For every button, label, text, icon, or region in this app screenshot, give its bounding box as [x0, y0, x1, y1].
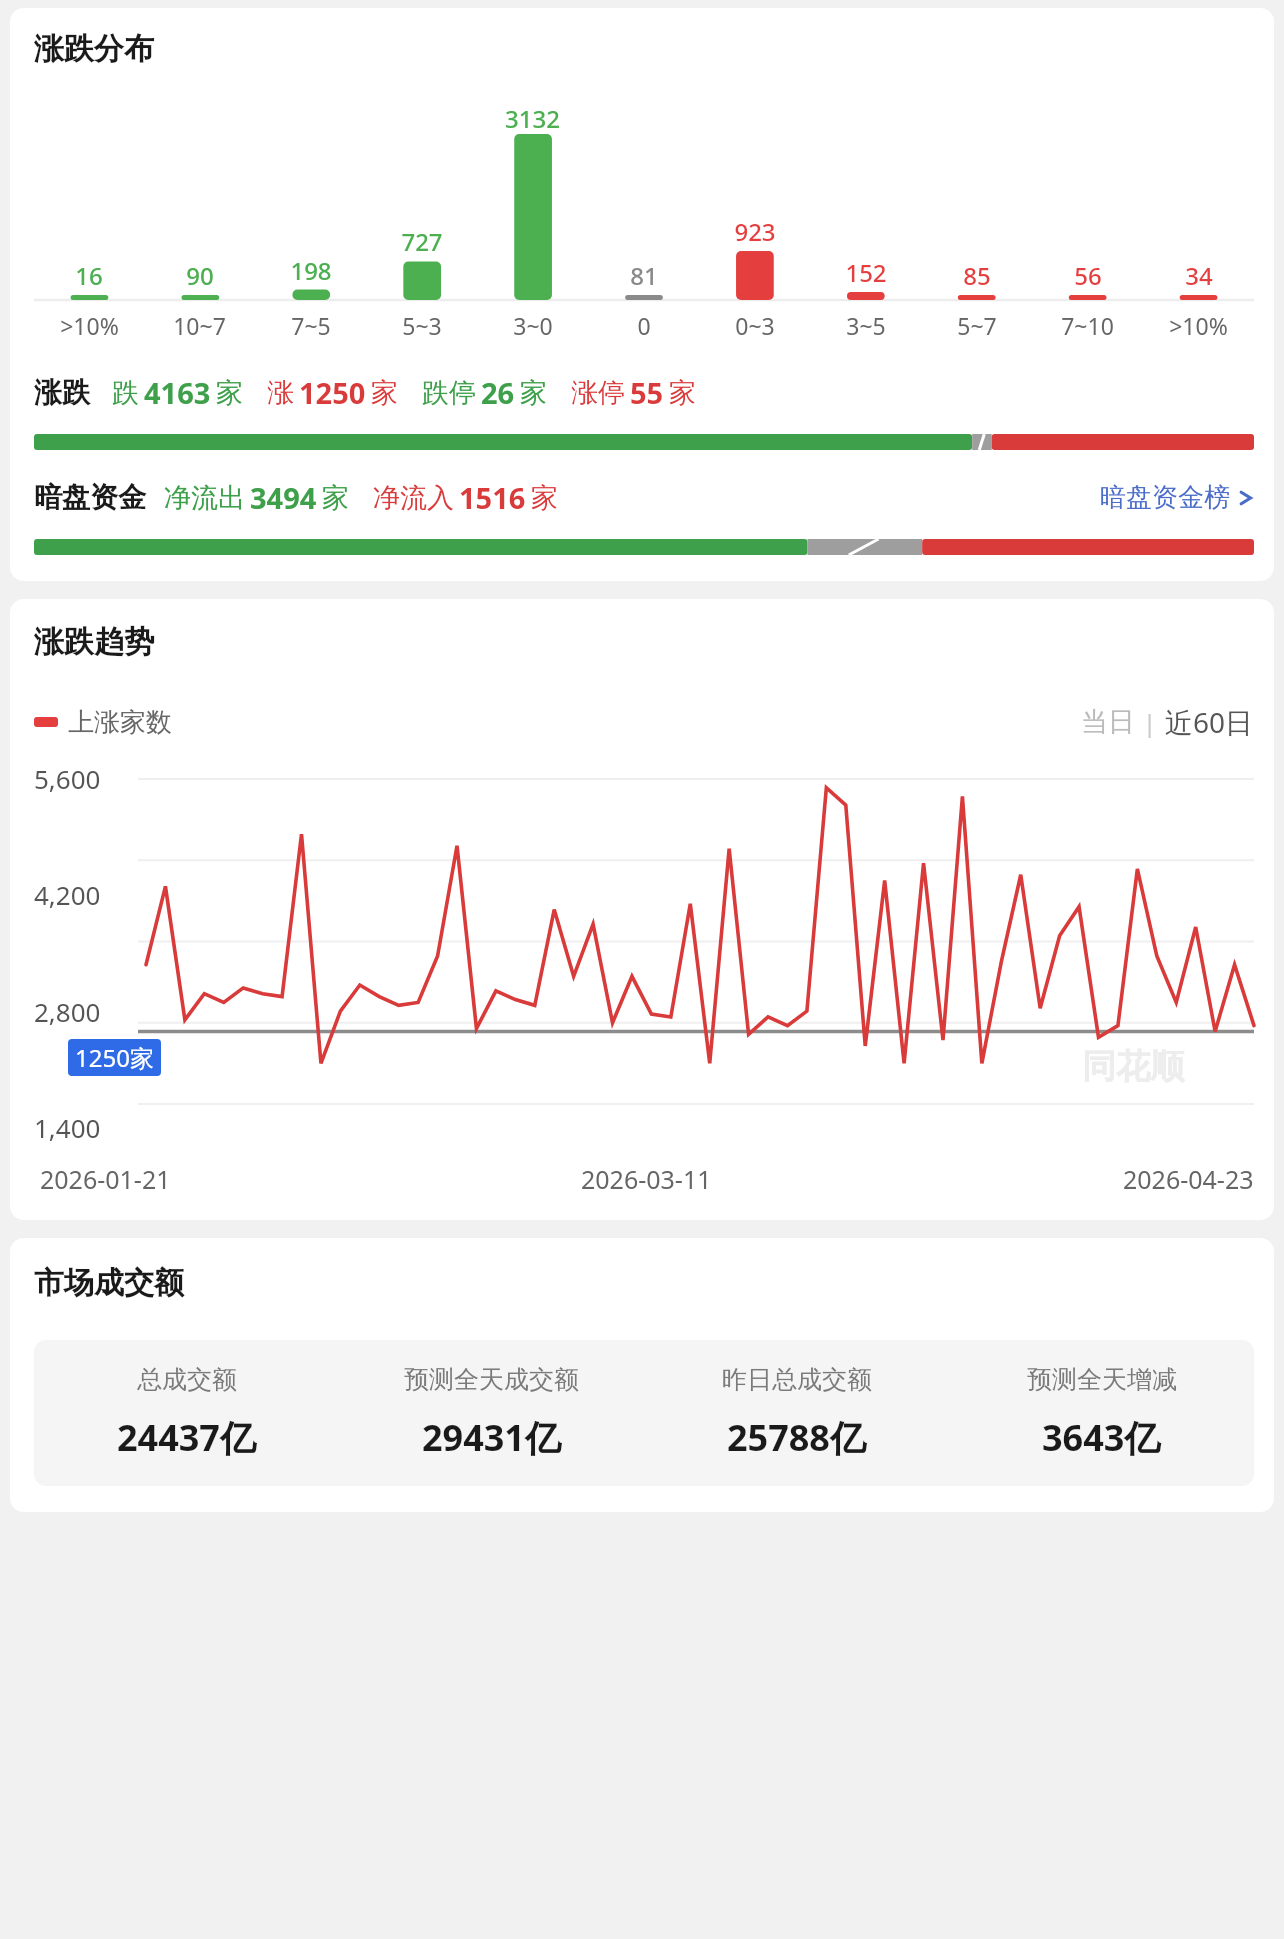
staticText: 0: [637, 310, 651, 341]
staticText: 4163: [144, 373, 211, 412]
staticText: 2,800: [34, 994, 101, 1029]
button[interactable]: 近60日: [1165, 703, 1254, 741]
staticText: 当日: [1081, 705, 1135, 739]
staticText: 家: [520, 376, 547, 410]
staticText: 昨日总成交额: [722, 1364, 872, 1395]
staticText: 涨跌分布: [34, 30, 154, 68]
staticText: >10%: [1169, 310, 1228, 341]
staticText: 198: [290, 254, 332, 287]
staticText: 152: [845, 256, 887, 289]
staticText: 2026-03-11: [581, 1162, 712, 1196]
staticText: 家: [669, 376, 696, 410]
staticText: 4,200: [34, 877, 101, 912]
staticText: 跌: [112, 376, 139, 410]
staticText: 3132: [505, 102, 560, 131]
staticText: 暗盘资金: [34, 480, 146, 515]
staticText: 81: [630, 259, 658, 292]
staticText: 3494: [250, 478, 317, 517]
staticText: 涨停: [571, 376, 625, 410]
staticText: 2026-04-23: [1123, 1162, 1254, 1196]
staticText: 同花顺: [1082, 1045, 1184, 1088]
staticText: 5~3: [402, 310, 442, 341]
button[interactable]: 暗盘资金榜: [1092, 481, 1254, 514]
staticText: 市场成交额: [34, 1264, 184, 1302]
staticText: 5~7: [957, 310, 997, 341]
staticText: 净流出: [164, 481, 245, 515]
staticText: 涨跌趋势: [34, 623, 154, 661]
staticText: 3~5: [846, 310, 886, 341]
staticText: 家: [371, 376, 398, 410]
staticText: 0~3: [735, 310, 775, 341]
staticText: 3643亿: [1042, 1413, 1161, 1462]
staticText: 25788亿: [727, 1413, 866, 1462]
staticText: 预测全天成交额: [404, 1364, 579, 1395]
staticText: 90: [186, 259, 214, 292]
staticText: 16: [75, 259, 103, 292]
staticText: 85: [963, 259, 991, 292]
staticText: 近60日: [1165, 703, 1254, 741]
staticText: 10~7: [173, 310, 226, 341]
staticText: 29431亿: [422, 1413, 561, 1462]
staticText: 7~10: [1061, 310, 1114, 341]
staticText: 1516: [459, 478, 526, 517]
staticText: 暗盘资金榜: [1100, 481, 1230, 514]
staticText: 家: [216, 376, 243, 410]
staticText: 涨跌: [34, 375, 90, 410]
button[interactable]: 当日: [1081, 705, 1135, 739]
staticText: 3~0: [513, 310, 553, 341]
staticText: 跌停: [422, 376, 476, 410]
staticText: 56: [1074, 259, 1102, 292]
staticText: 净流入: [373, 481, 454, 515]
staticText: 上涨家数: [68, 706, 172, 739]
staticText: 55: [630, 373, 664, 412]
staticText: 1250: [299, 373, 366, 412]
staticText: 涨: [267, 376, 294, 410]
staticText: 1250家: [75, 1041, 154, 1074]
staticText: 923: [734, 215, 776, 248]
staticText: 总成交额: [137, 1364, 237, 1395]
staticText: 2026-01-21: [40, 1162, 171, 1196]
staticText: 5,600: [34, 761, 101, 796]
staticText: 34: [1185, 259, 1213, 292]
staticText: >10%: [60, 310, 119, 341]
staticText: 727: [401, 225, 443, 258]
staticText: 家: [531, 481, 558, 515]
staticText: |: [1143, 706, 1157, 739]
staticText: 家: [322, 481, 349, 515]
staticText: 预测全天增减: [1027, 1364, 1177, 1395]
staticText: 26: [481, 373, 515, 412]
staticText: 24437亿: [117, 1413, 256, 1462]
staticText: 1,400: [34, 1110, 101, 1145]
staticText: 7~5: [291, 310, 331, 341]
